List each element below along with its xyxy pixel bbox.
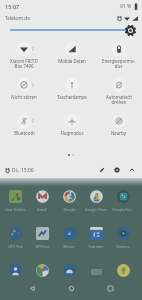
staticText: Nicht stören — [11, 94, 37, 100]
staticText: Telekom.de — [5, 15, 30, 21]
staticText: Wetter — [63, 244, 75, 249]
staticText: Energiesparmo- dus — [102, 58, 135, 69]
staticText: 15:07 — [5, 3, 20, 11]
staticText: Bluetooth — [14, 130, 35, 136]
button[interactable]: Wetter — [56, 227, 82, 257]
staticText: Taschenlampe — [57, 94, 87, 100]
button[interactable]: Geo Tracker — [2, 190, 28, 220]
button[interactable]: Taschenlampe — [48, 75, 95, 111]
staticText: Gmail — [37, 207, 47, 212]
button[interactable] — [29, 264, 55, 294]
button[interactable]: Xiaomi FRITZ! Box 7490 — [0, 39, 48, 75]
button[interactable]: Automatisch drehen — [95, 75, 142, 111]
button[interactable]: Back — [25, 281, 39, 295]
button[interactable]: Collapse — [126, 164, 138, 176]
button[interactable]: Nicht stören — [0, 75, 48, 111]
button[interactable]: Bluetooth — [0, 111, 48, 147]
button[interactable]: GPS Test — [2, 227, 28, 257]
button[interactable]: Edit — [96, 164, 108, 176]
staticText: Google Fot... — [112, 207, 134, 212]
staticText: Di., 15:00 — [12, 167, 34, 174]
staticText: 91 % — [120, 3, 132, 10]
staticText: Geo Tracker — [5, 207, 26, 212]
staticText: Xiaomi FRITZ! Box 7490 — [10, 58, 38, 69]
button[interactable]: Kamera — [110, 227, 136, 257]
button[interactable] — [2, 264, 28, 294]
button[interactable]: Mobile Daten — [48, 39, 95, 75]
staticText: Kalender — [88, 244, 104, 249]
button[interactable]: GPSTest — [29, 227, 55, 257]
button[interactable]: Flugmodus — [48, 111, 95, 147]
button[interactable] — [110, 264, 136, 294]
button[interactable]: Nearby — [95, 111, 142, 147]
button[interactable]: Google Drive — [83, 190, 109, 220]
staticText: Kamera — [116, 244, 130, 249]
button[interactable]: Google — [56, 190, 82, 220]
button[interactable] — [83, 264, 109, 294]
button[interactable]: Settings — [111, 164, 123, 176]
staticText: Nearby — [111, 130, 126, 136]
staticText: GPS Test — [8, 244, 23, 249]
staticText: GPSTest — [35, 244, 49, 249]
button[interactable]: Home — [64, 281, 78, 295]
button[interactable]: Energiesparmo- dus — [95, 39, 142, 75]
button[interactable]: Google Fot... — [110, 190, 136, 220]
button[interactable]: Brightness — [125, 25, 136, 36]
button[interactable] — [56, 264, 82, 294]
staticText: Google — [63, 207, 76, 212]
button[interactable]: Kalender — [83, 227, 109, 257]
staticText: Automatisch drehen — [106, 94, 132, 105]
staticText: Mobile Daten — [58, 58, 86, 64]
staticText: Google Drive — [85, 207, 107, 212]
staticText: Flugmodus — [60, 130, 84, 136]
button[interactable]: Recents — [103, 281, 117, 295]
button[interactable]: Gmail — [29, 190, 55, 220]
